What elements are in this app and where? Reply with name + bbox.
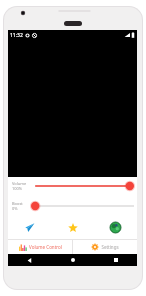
button[interactable]: Settings xyxy=(73,240,137,254)
staticText: 11:32 xyxy=(10,32,23,39)
button[interactable]: Volume xyxy=(8,177,137,195)
staticText: Volume xyxy=(12,181,27,186)
staticText: 100% xyxy=(12,186,23,191)
button[interactable]: Volume Control xyxy=(8,240,72,254)
staticText: Settings xyxy=(101,244,119,250)
button[interactable]: Back xyxy=(8,254,51,266)
button[interactable]: Browser xyxy=(94,218,137,237)
button[interactable]: Boost xyxy=(8,197,137,215)
button[interactable]: Recents xyxy=(94,254,137,266)
button[interactable]: Telegram xyxy=(8,218,51,237)
staticText: 0% xyxy=(12,206,18,211)
button[interactable]: Home xyxy=(51,254,94,266)
staticText: Boost xyxy=(12,201,23,206)
staticText: Volume Control xyxy=(29,244,62,250)
button[interactable]: Favourites xyxy=(51,218,94,237)
